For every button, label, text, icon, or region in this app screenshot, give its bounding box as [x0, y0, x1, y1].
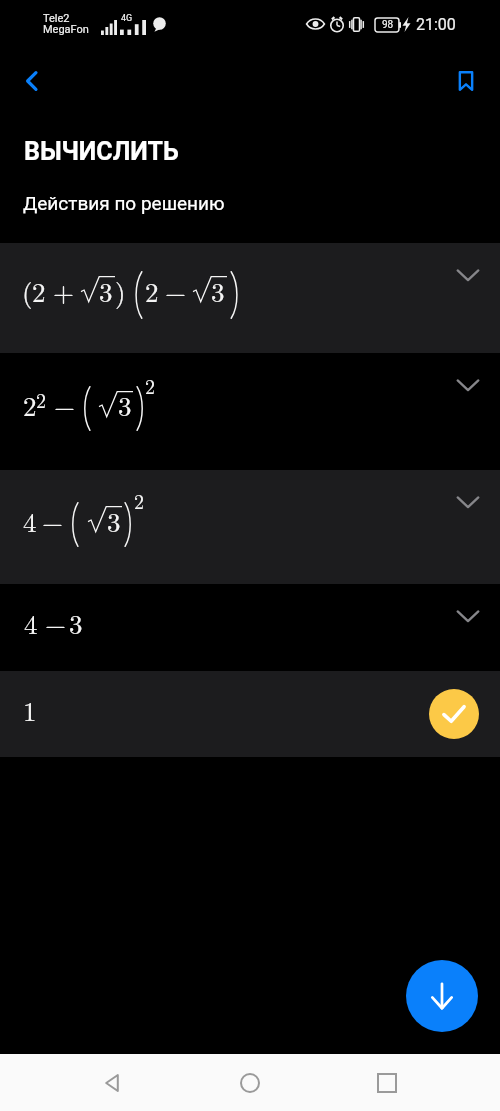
- button[interactable]: Expand step: [446, 363, 490, 407]
- staticText: 2: [145, 272, 159, 310]
- staticText: Действия по решению: [23, 192, 225, 214]
- button[interactable]: Scroll down: [406, 960, 478, 1032]
- staticText: 1: [23, 691, 37, 729]
- button[interactable]: (: [0, 243, 500, 353]
- button[interactable]: Back: [89, 1059, 137, 1107]
- staticText: 4: [23, 502, 37, 540]
- staticText: 98: [382, 19, 394, 31]
- staticText: 2: [145, 371, 155, 399]
- staticText: −: [42, 502, 64, 540]
- staticText: 4G: [121, 13, 133, 24]
- staticText: (: [22, 272, 33, 310]
- staticText: 21:00: [416, 15, 456, 34]
- staticText: −: [165, 272, 187, 310]
- staticText: 3: [69, 604, 83, 642]
- staticText: 2: [32, 272, 46, 310]
- staticText: 2: [23, 386, 37, 424]
- button[interactable]: 2: [0, 353, 500, 470]
- staticText: 2: [36, 385, 46, 413]
- button[interactable]: 1: [0, 671, 500, 757]
- staticText: 3: [118, 386, 132, 424]
- staticText: 3: [107, 502, 121, 540]
- staticText: 2: [134, 486, 144, 514]
- staticText: Tele2: [43, 12, 70, 25]
- staticText: ): [115, 272, 126, 310]
- button[interactable]: Expand step: [446, 253, 490, 297]
- button[interactable]: Back: [10, 59, 54, 103]
- staticText: ВЫЧИСЛИТЬ: [24, 137, 179, 166]
- button[interactable]: Home: [226, 1059, 274, 1107]
- button[interactable]: Done: [429, 689, 479, 739]
- staticText: 3: [211, 272, 225, 310]
- staticText: −: [45, 604, 67, 642]
- staticText: MegaFon: [43, 23, 89, 36]
- staticText: 3: [99, 272, 113, 310]
- button[interactable]: Bookmark: [444, 59, 488, 103]
- button[interactable]: 4: [0, 584, 500, 671]
- button[interactable]: 4: [0, 470, 500, 584]
- button[interactable]: Expand step: [446, 594, 490, 638]
- button[interactable]: Recents: [363, 1059, 411, 1107]
- button[interactable]: Expand step: [446, 480, 490, 524]
- staticText: −: [54, 386, 76, 424]
- staticText: +: [53, 272, 75, 310]
- staticText: 4: [24, 604, 38, 642]
